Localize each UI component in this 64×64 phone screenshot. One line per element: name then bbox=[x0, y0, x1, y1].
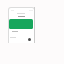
button[interactable] bbox=[9, 19, 33, 29]
button[interactable]: Profile bbox=[28, 38, 31, 41]
